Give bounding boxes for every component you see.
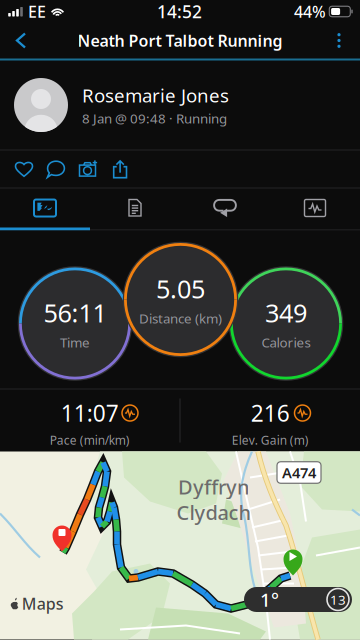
staticText: 216 <box>251 398 290 428</box>
staticText: 56:11 <box>43 296 106 329</box>
staticText: 14:52 <box>157 0 202 23</box>
staticText: A474 <box>282 463 316 482</box>
button[interactable]: Map <box>0 188 90 227</box>
button[interactable]: Share <box>104 150 136 187</box>
button[interactable]: Graphs <box>270 188 360 227</box>
staticText: Neath Port Talbot Running <box>77 30 282 51</box>
button[interactable]: Laps <box>180 188 270 227</box>
staticText: Time <box>60 333 90 351</box>
staticText: Rosemarie Jones <box>82 83 229 108</box>
button[interactable]: Like <box>8 150 40 187</box>
staticText: 13 <box>330 591 346 608</box>
staticText: 11:07 <box>61 398 119 428</box>
button[interactable]: Comment <box>40 150 72 187</box>
staticText: 1° <box>260 587 279 612</box>
staticText: 5.05 <box>156 272 205 305</box>
staticText: Clydach <box>176 499 251 526</box>
staticText: Calories <box>261 333 310 351</box>
staticText: 44% <box>294 1 326 22</box>
staticText: Elev. Gain (m) <box>232 432 309 448</box>
staticText: EE <box>28 1 46 22</box>
button[interactable]: Back <box>4 22 38 58</box>
staticText: Pace (min/km) <box>50 432 130 448</box>
staticText: Distance (km) <box>139 309 222 327</box>
button[interactable]: Splits <box>90 188 180 227</box>
button[interactable]: More options <box>322 22 356 58</box>
staticText: Maps <box>22 593 64 614</box>
staticText: Dyffryn <box>178 473 250 500</box>
staticText: 349 <box>265 296 307 329</box>
staticText: 8 Jan @ 09:48 · Running <box>82 109 227 127</box>
button[interactable]: Add photo <box>72 150 104 187</box>
